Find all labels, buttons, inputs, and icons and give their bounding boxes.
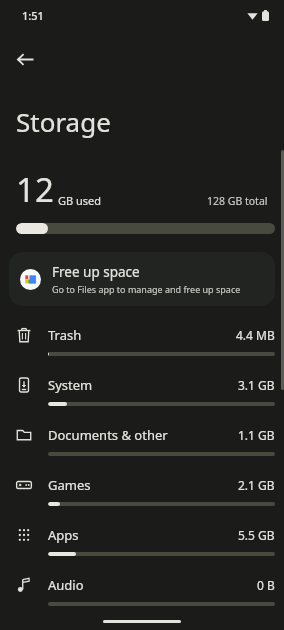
button[interactable]: Free up space	[9, 252, 275, 306]
staticText: System	[48, 376, 93, 394]
staticText: 128 GB total	[207, 194, 268, 208]
staticText: 4.4 MB	[236, 327, 275, 343]
button[interactable]: Trash	[0, 317, 284, 367]
staticText: Free up space	[52, 263, 140, 281]
staticText: Storage	[16, 104, 111, 139]
staticText: 0 B	[257, 577, 275, 593]
staticText: Go to Files app to manage and free up sp…	[52, 283, 241, 295]
staticText: 1:51	[22, 8, 44, 23]
staticText: Games	[48, 476, 91, 494]
staticText: Trash	[48, 326, 82, 344]
button[interactable]: Back	[6, 40, 44, 78]
button[interactable]: Apps	[0, 517, 284, 567]
staticText: Audio	[48, 576, 84, 594]
staticText: 2.1 GB	[238, 477, 275, 493]
staticText: 3.1 GB	[238, 377, 275, 393]
staticText: 1.1 GB	[238, 427, 275, 443]
staticText: GB used	[58, 193, 102, 208]
button[interactable]: Games	[0, 467, 284, 517]
staticText: Documents & other	[48, 426, 168, 444]
staticText: 12	[16, 167, 54, 212]
button[interactable]: Audio	[0, 567, 284, 617]
button[interactable]: Documents & other	[0, 417, 284, 467]
staticText: Apps	[48, 526, 79, 544]
staticText: 5.5 GB	[238, 527, 275, 543]
button[interactable]: System	[0, 367, 284, 417]
